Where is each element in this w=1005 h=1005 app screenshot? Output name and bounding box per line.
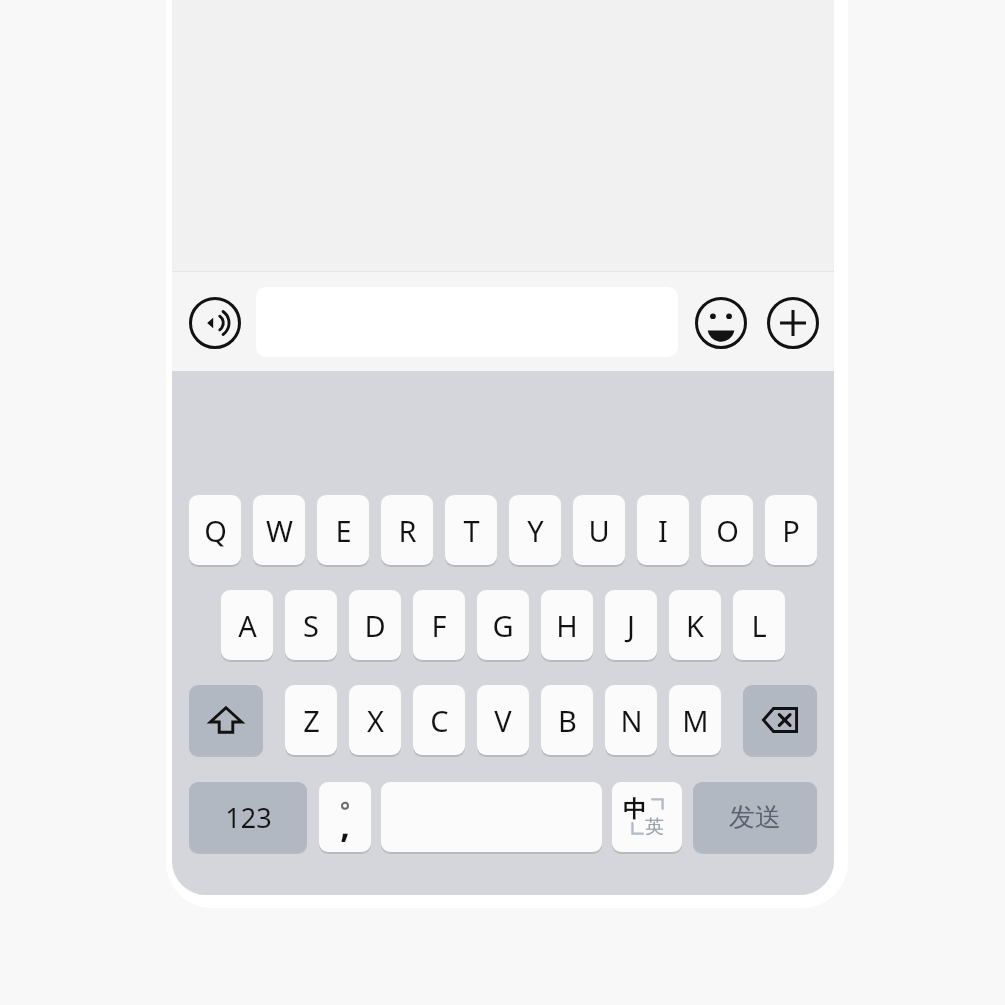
- button[interactable]: L: [733, 590, 785, 660]
- button[interactable]: Emoji: [694, 296, 748, 350]
- button[interactable]: S: [285, 590, 337, 660]
- staticText: 发送: [729, 801, 781, 834]
- staticText: H: [556, 606, 578, 645]
- button[interactable]: B: [541, 685, 593, 755]
- button[interactable]: Y: [509, 495, 561, 565]
- button[interactable]: V: [477, 685, 529, 755]
- staticText: P: [782, 511, 800, 550]
- button[interactable]: C: [413, 685, 465, 755]
- staticText: M: [682, 701, 709, 740]
- button[interactable]: G: [477, 590, 529, 660]
- staticText: N: [620, 701, 643, 740]
- staticText: 123: [225, 799, 272, 836]
- button[interactable]: F: [413, 590, 465, 660]
- staticText: I: [658, 511, 668, 550]
- staticText: G: [492, 606, 514, 645]
- button[interactable]: E: [317, 495, 369, 565]
- staticText: F: [431, 606, 447, 645]
- staticText: Y: [527, 511, 544, 550]
- staticText: W: [266, 511, 293, 550]
- staticText: X: [367, 701, 384, 740]
- staticText: O: [716, 511, 739, 550]
- button[interactable]: X: [349, 685, 401, 755]
- staticText: T: [463, 511, 480, 550]
- button[interactable]: Q: [189, 495, 241, 565]
- button[interactable]: T: [445, 495, 497, 565]
- staticText: ,: [340, 802, 350, 842]
- button[interactable]: H: [541, 590, 593, 660]
- button[interactable]: U: [573, 495, 625, 565]
- button[interactable]: More options: [766, 296, 820, 350]
- button[interactable]: D: [349, 590, 401, 660]
- button[interactable]: J: [605, 590, 657, 660]
- staticText: S: [303, 606, 319, 645]
- button[interactable]: Backspace: [743, 685, 817, 755]
- button[interactable]: Z: [285, 685, 337, 755]
- button[interactable]: Voice input: [188, 296, 242, 350]
- staticText: Z: [303, 701, 320, 740]
- staticText: K: [686, 606, 704, 645]
- staticText: R: [398, 511, 417, 550]
- button[interactable]: N: [605, 685, 657, 755]
- staticText: B: [558, 701, 577, 740]
- button[interactable]: Numbers: [189, 782, 307, 852]
- staticText: U: [588, 511, 610, 550]
- staticText: V: [494, 701, 512, 740]
- button[interactable]: Switch language: [612, 782, 682, 852]
- button[interactable]: Shift: [189, 685, 263, 755]
- staticText: Q: [204, 511, 227, 550]
- staticText: A: [238, 606, 257, 645]
- button[interactable]: Send: [693, 782, 817, 852]
- button[interactable]: K: [669, 590, 721, 660]
- button[interactable]: A: [221, 590, 273, 660]
- staticText: 英: [645, 815, 664, 839]
- staticText: J: [627, 606, 635, 645]
- button[interactable]: Comma: [319, 782, 371, 852]
- staticText: C: [430, 701, 449, 740]
- button[interactable]: R: [381, 495, 433, 565]
- button[interactable]: O: [701, 495, 753, 565]
- staticText: D: [364, 606, 386, 645]
- button[interactable]: Space: [381, 782, 602, 852]
- button[interactable]: I: [637, 495, 689, 565]
- button[interactable]: M: [669, 685, 721, 755]
- staticText: L: [751, 606, 767, 645]
- button[interactable]: W: [253, 495, 305, 565]
- button[interactable]: P: [765, 495, 817, 565]
- staticText: 中: [623, 795, 646, 824]
- staticText: E: [335, 511, 352, 550]
